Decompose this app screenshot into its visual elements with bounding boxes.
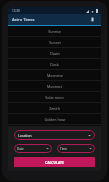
button[interactable]: Date xyxy=(14,144,52,153)
button[interactable]: Dusk xyxy=(8,59,101,69)
staticText: 12:30 xyxy=(12,9,20,13)
staticText: Solar noon xyxy=(45,95,64,100)
staticText: Golden hour xyxy=(44,117,66,122)
staticText: Moonrise xyxy=(47,73,63,78)
staticText: Dusk xyxy=(50,62,59,67)
button[interactable]: CALCULATE xyxy=(14,157,95,167)
staticText: Location xyxy=(18,133,32,138)
staticText: CALCULATE xyxy=(45,160,64,165)
button[interactable]: Solar noon xyxy=(8,92,101,102)
button[interactable]: More options xyxy=(88,15,97,24)
staticText: Time xyxy=(60,147,67,151)
staticText: Date xyxy=(17,147,24,151)
button[interactable]: Moonset xyxy=(8,81,101,91)
button[interactable]: Moonrise xyxy=(8,70,101,80)
button[interactable]: Zenith xyxy=(8,103,101,113)
button[interactable]: Dawn xyxy=(8,48,101,58)
staticText: Sunset xyxy=(49,40,61,45)
staticText: Moonset xyxy=(47,84,62,89)
staticText: Sunrise xyxy=(48,29,61,34)
button[interactable]: Sunset xyxy=(8,37,101,47)
button[interactable]: Sunrise xyxy=(8,26,101,36)
button[interactable]: Golden hour xyxy=(8,114,101,124)
staticText: Zenith xyxy=(49,106,60,111)
button[interactable]: Location xyxy=(14,130,95,140)
button[interactable]: Time xyxy=(57,144,95,153)
staticText: Dawn xyxy=(50,51,60,56)
staticText: Astro Times xyxy=(12,17,35,22)
